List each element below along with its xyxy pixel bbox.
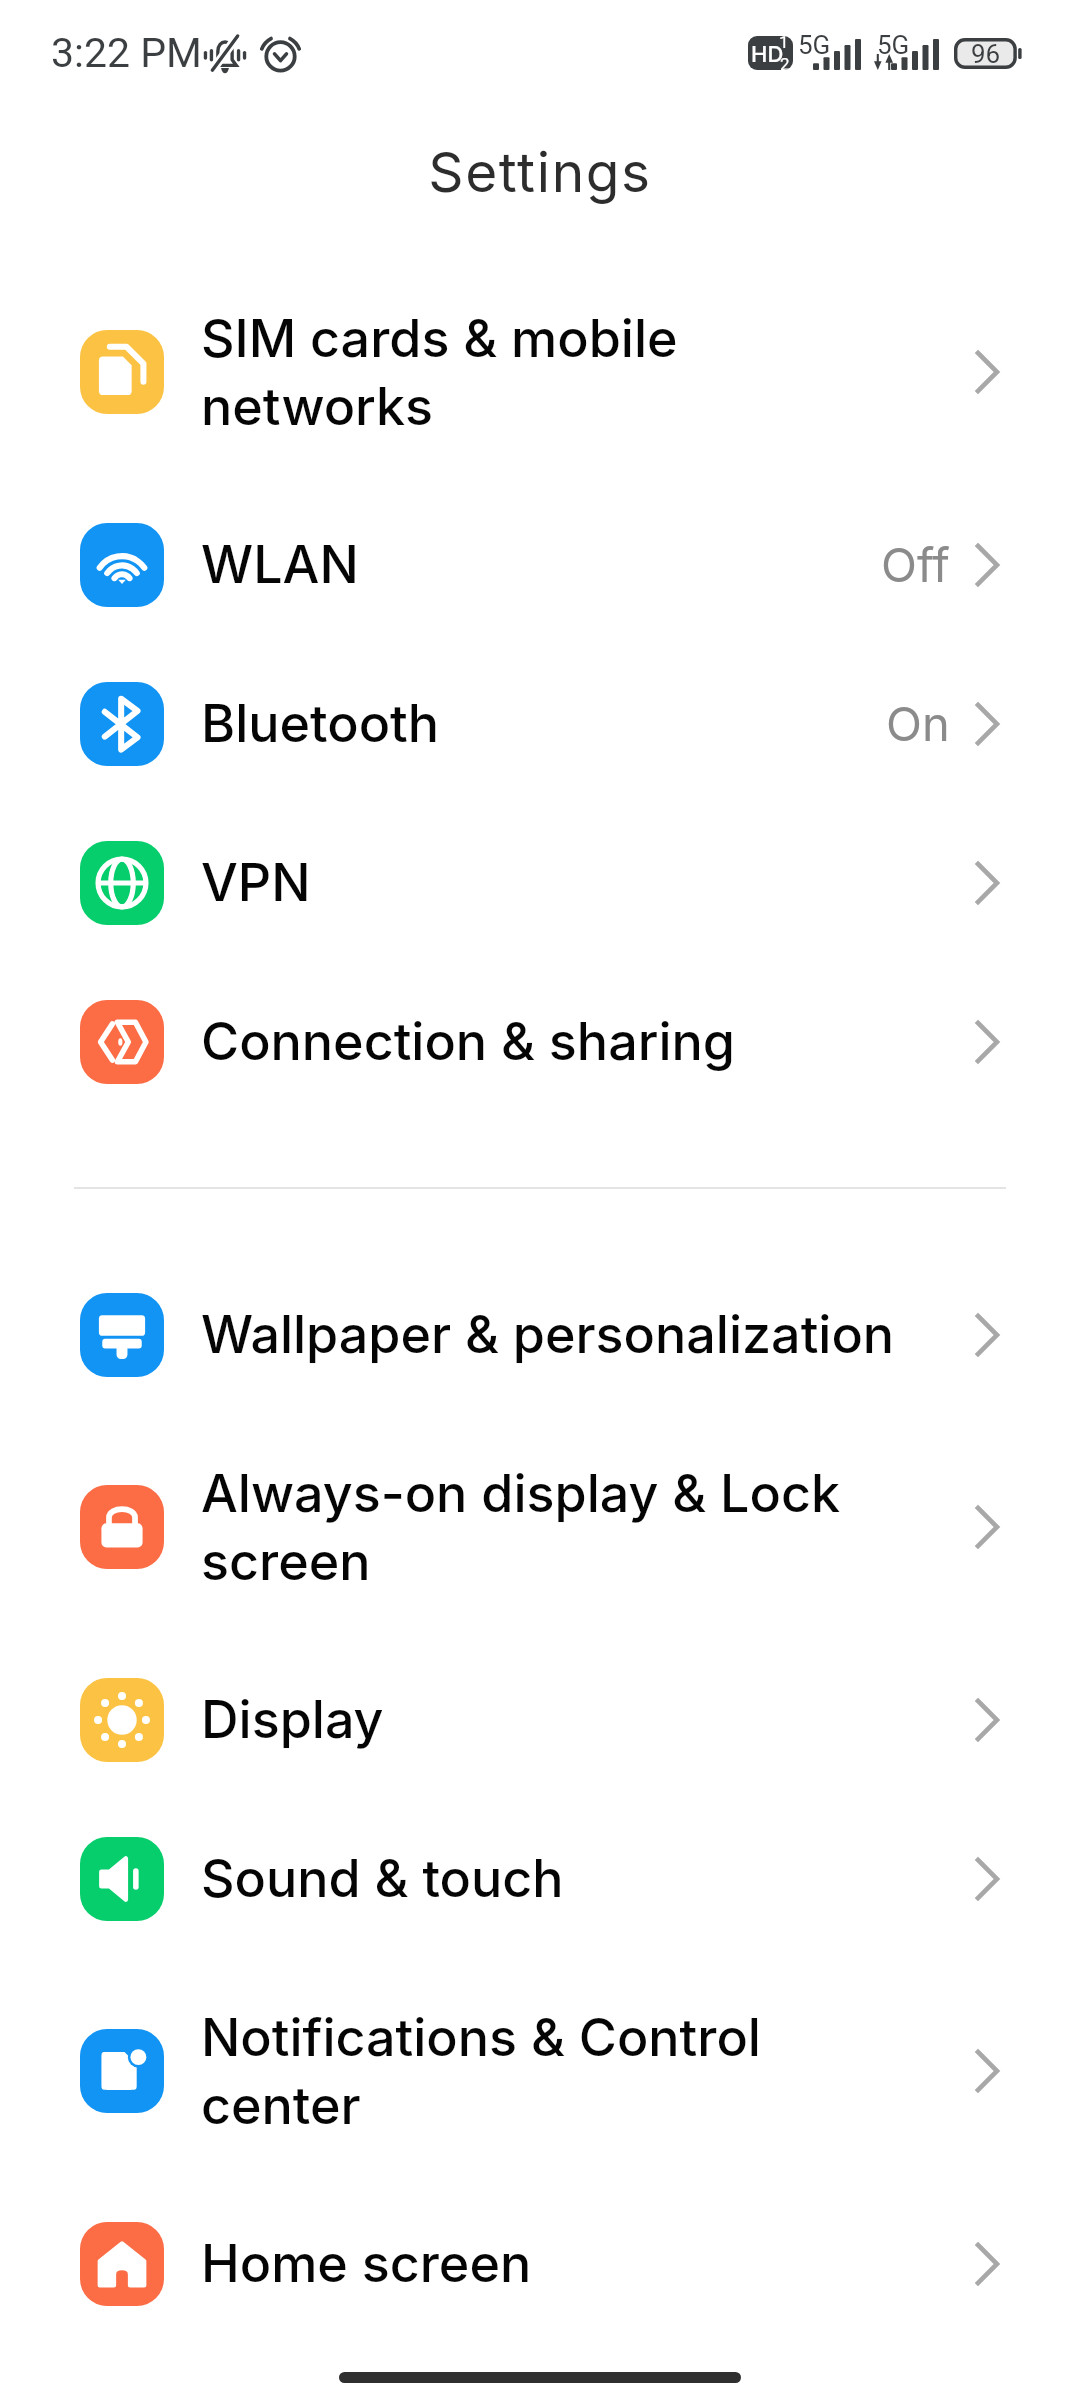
- staticText: HD: [751, 41, 784, 68]
- staticText: 1: [779, 36, 789, 52]
- staticText: WLAN: [201, 533, 359, 596]
- staticText: 5G: [877, 30, 910, 60]
- other: Home: [339, 2372, 741, 2383]
- button[interactable]: Bluetooth: [0, 644, 1080, 803]
- staticText: 3:22 PM: [51, 29, 202, 77]
- staticText: Wallpaper & personalization: [201, 1303, 895, 1366]
- button[interactable]: Home screen: [0, 2184, 1080, 2343]
- staticText: Notifications & Control center: [201, 2006, 761, 2137]
- staticText: 5G: [798, 30, 831, 60]
- staticText: VPN: [201, 851, 311, 914]
- staticText: Connection & sharing: [201, 1010, 736, 1073]
- button[interactable]: Sound & touch: [0, 1799, 1080, 1958]
- staticText: Bluetooth: [201, 692, 440, 755]
- staticText: 96: [971, 39, 1001, 69]
- staticText: Sound & touch: [201, 1847, 564, 1910]
- staticText: SIM cards & mobile networks: [201, 307, 678, 438]
- staticText: Display: [201, 1688, 384, 1751]
- staticText: Off: [881, 536, 950, 593]
- staticText: Settings: [428, 139, 652, 206]
- button[interactable]: SIM cards & mobile networks: [0, 259, 1080, 485]
- button[interactable]: Display: [0, 1640, 1080, 1799]
- staticText: Home screen: [201, 2232, 532, 2295]
- button[interactable]: Always-on display & Lock screen: [0, 1414, 1080, 1640]
- button[interactable]: Wallpaper & personalization: [0, 1255, 1080, 1414]
- staticText: Always-on display & Lock screen: [201, 1462, 840, 1593]
- button[interactable]: Connection & sharing: [0, 962, 1080, 1121]
- button[interactable]: WLAN: [0, 485, 1080, 644]
- button[interactable]: Notifications & Control center: [0, 1958, 1080, 2184]
- staticText: 2: [780, 54, 790, 70]
- staticText: On: [886, 695, 950, 752]
- button[interactable]: VPN: [0, 803, 1080, 962]
